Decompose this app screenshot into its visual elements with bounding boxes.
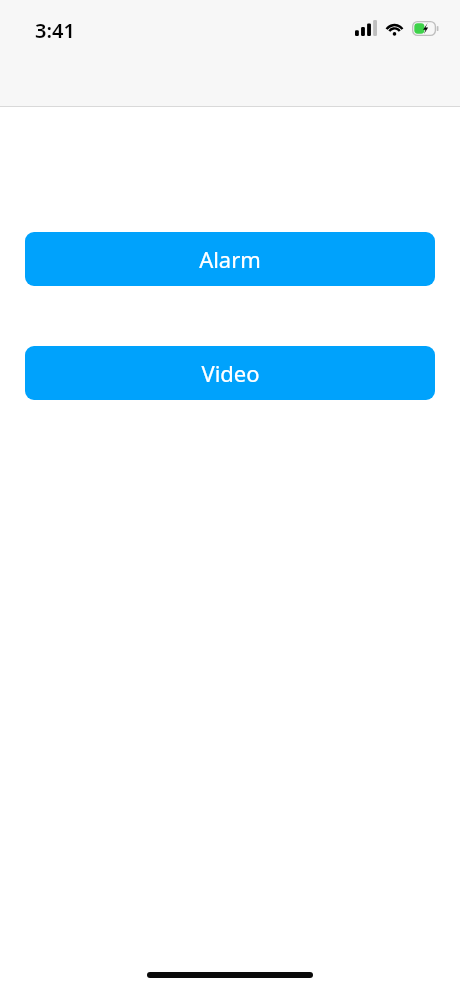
staticText: Video (201, 358, 260, 388)
button[interactable]: Alarm (25, 232, 435, 286)
staticText: Alarm (199, 244, 261, 274)
staticText: 3:41 (35, 17, 75, 44)
button[interactable]: Video (25, 346, 435, 400)
